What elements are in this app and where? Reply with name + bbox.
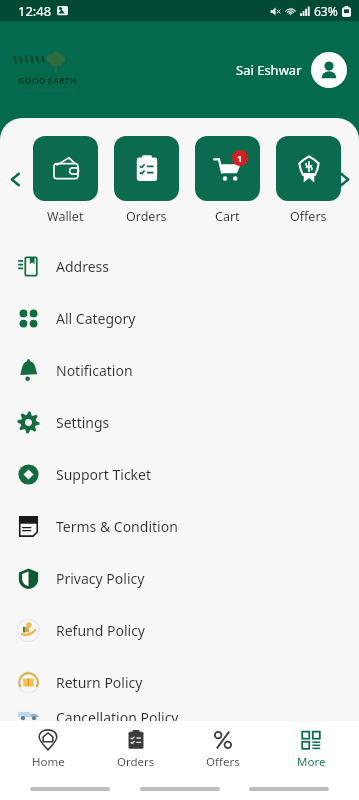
button[interactable]: Terms & Condition: [0, 500, 359, 552]
staticText: Offers: [206, 754, 240, 770]
button[interactable]: Wallet: [33, 136, 98, 225]
staticText: Refund Policy: [56, 621, 145, 640]
staticText: More: [297, 754, 326, 770]
button[interactable]: All Category: [0, 292, 359, 344]
button[interactable]: Home: [8, 721, 88, 778]
staticText: Wallet: [47, 208, 84, 225]
staticText: Terms & Condition: [56, 517, 178, 536]
staticText: 63%: [314, 3, 338, 19]
staticText: Address: [56, 257, 109, 276]
button[interactable]: Orders: [96, 721, 176, 778]
button[interactable]: Sai Eshwar: [236, 52, 347, 88]
button[interactable]: Next: [331, 166, 357, 192]
staticText: Privacy Policy: [56, 569, 145, 588]
button[interactable]: Refund Policy: [0, 604, 359, 656]
staticText: Return Policy: [56, 673, 143, 692]
staticText: Cart: [215, 208, 240, 225]
staticText: Orders: [117, 754, 155, 770]
button[interactable]: Privacy Policy: [0, 552, 359, 604]
button[interactable]: More: [271, 721, 351, 778]
staticText: Support Ticket: [56, 465, 152, 484]
staticText: Settings: [56, 413, 110, 432]
button[interactable]: Settings: [0, 396, 359, 448]
staticText: Cancellation Policy: [56, 708, 179, 721]
staticText: Sai Eshwar: [236, 61, 302, 79]
button[interactable]: 1: [195, 136, 260, 225]
staticText: Offers: [290, 208, 327, 225]
staticText: Notification: [56, 361, 133, 380]
staticText: 12:48: [18, 2, 52, 20]
button[interactable]: Notification: [0, 344, 359, 396]
button[interactable]: Offers: [183, 721, 263, 778]
button[interactable]: Address: [0, 240, 359, 292]
staticText: 1: [237, 152, 243, 164]
staticText: GOOD EARTH: [18, 74, 77, 86]
button[interactable]: Return Policy: [0, 656, 359, 708]
button[interactable]: Previous: [2, 166, 28, 192]
staticText: All Category: [56, 309, 136, 328]
button[interactable]: Offers: [276, 136, 341, 225]
staticText: Home: [32, 754, 65, 770]
button[interactable]: Orders: [114, 136, 179, 225]
button[interactable]: Cancellation Policy: [0, 708, 359, 721]
button[interactable]: Support Ticket: [0, 448, 359, 500]
staticText: Orders: [126, 208, 167, 225]
staticText: Making life Good, Greener & Green: [18, 87, 76, 92]
